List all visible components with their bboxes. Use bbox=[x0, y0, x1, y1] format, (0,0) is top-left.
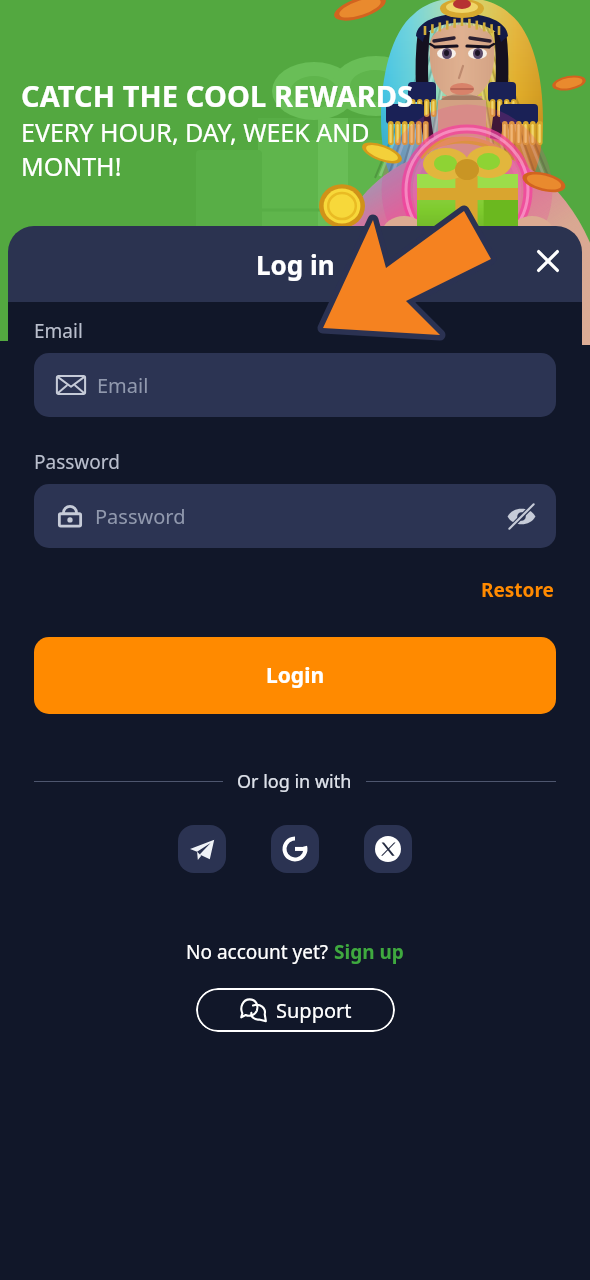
staticText: Email bbox=[97, 372, 149, 399]
staticText: Email bbox=[34, 318, 83, 344]
button[interactable]: Sign up bbox=[334, 939, 404, 965]
staticText: CATCH THE COOL REWARDS bbox=[21, 76, 414, 115]
button[interactable]: Password bbox=[34, 484, 556, 548]
staticText: Support bbox=[276, 997, 352, 1024]
staticText: Login bbox=[266, 661, 325, 690]
button[interactable]: Email bbox=[34, 353, 556, 417]
button[interactable]: Close bbox=[527, 240, 569, 282]
button[interactable]: Telegram bbox=[178, 825, 226, 873]
staticText: No account yet? bbox=[186, 939, 334, 965]
staticText: Log in bbox=[256, 247, 335, 282]
staticText: EVERY HOUR, DAY, WEEK AND MONTH! bbox=[21, 115, 370, 183]
staticText: Restore bbox=[481, 577, 554, 603]
button[interactable]: Restore bbox=[479, 573, 556, 607]
button[interactable]: Show password bbox=[504, 499, 538, 533]
button[interactable]: Login bbox=[34, 637, 556, 714]
button[interactable]: X bbox=[364, 825, 412, 873]
staticText: Password bbox=[95, 503, 186, 530]
button[interactable]: Support bbox=[196, 988, 395, 1032]
staticText: Password bbox=[34, 449, 120, 475]
button[interactable]: Google bbox=[271, 825, 319, 873]
staticText: Or log in with bbox=[237, 769, 352, 794]
staticText: Sign up bbox=[334, 939, 404, 965]
